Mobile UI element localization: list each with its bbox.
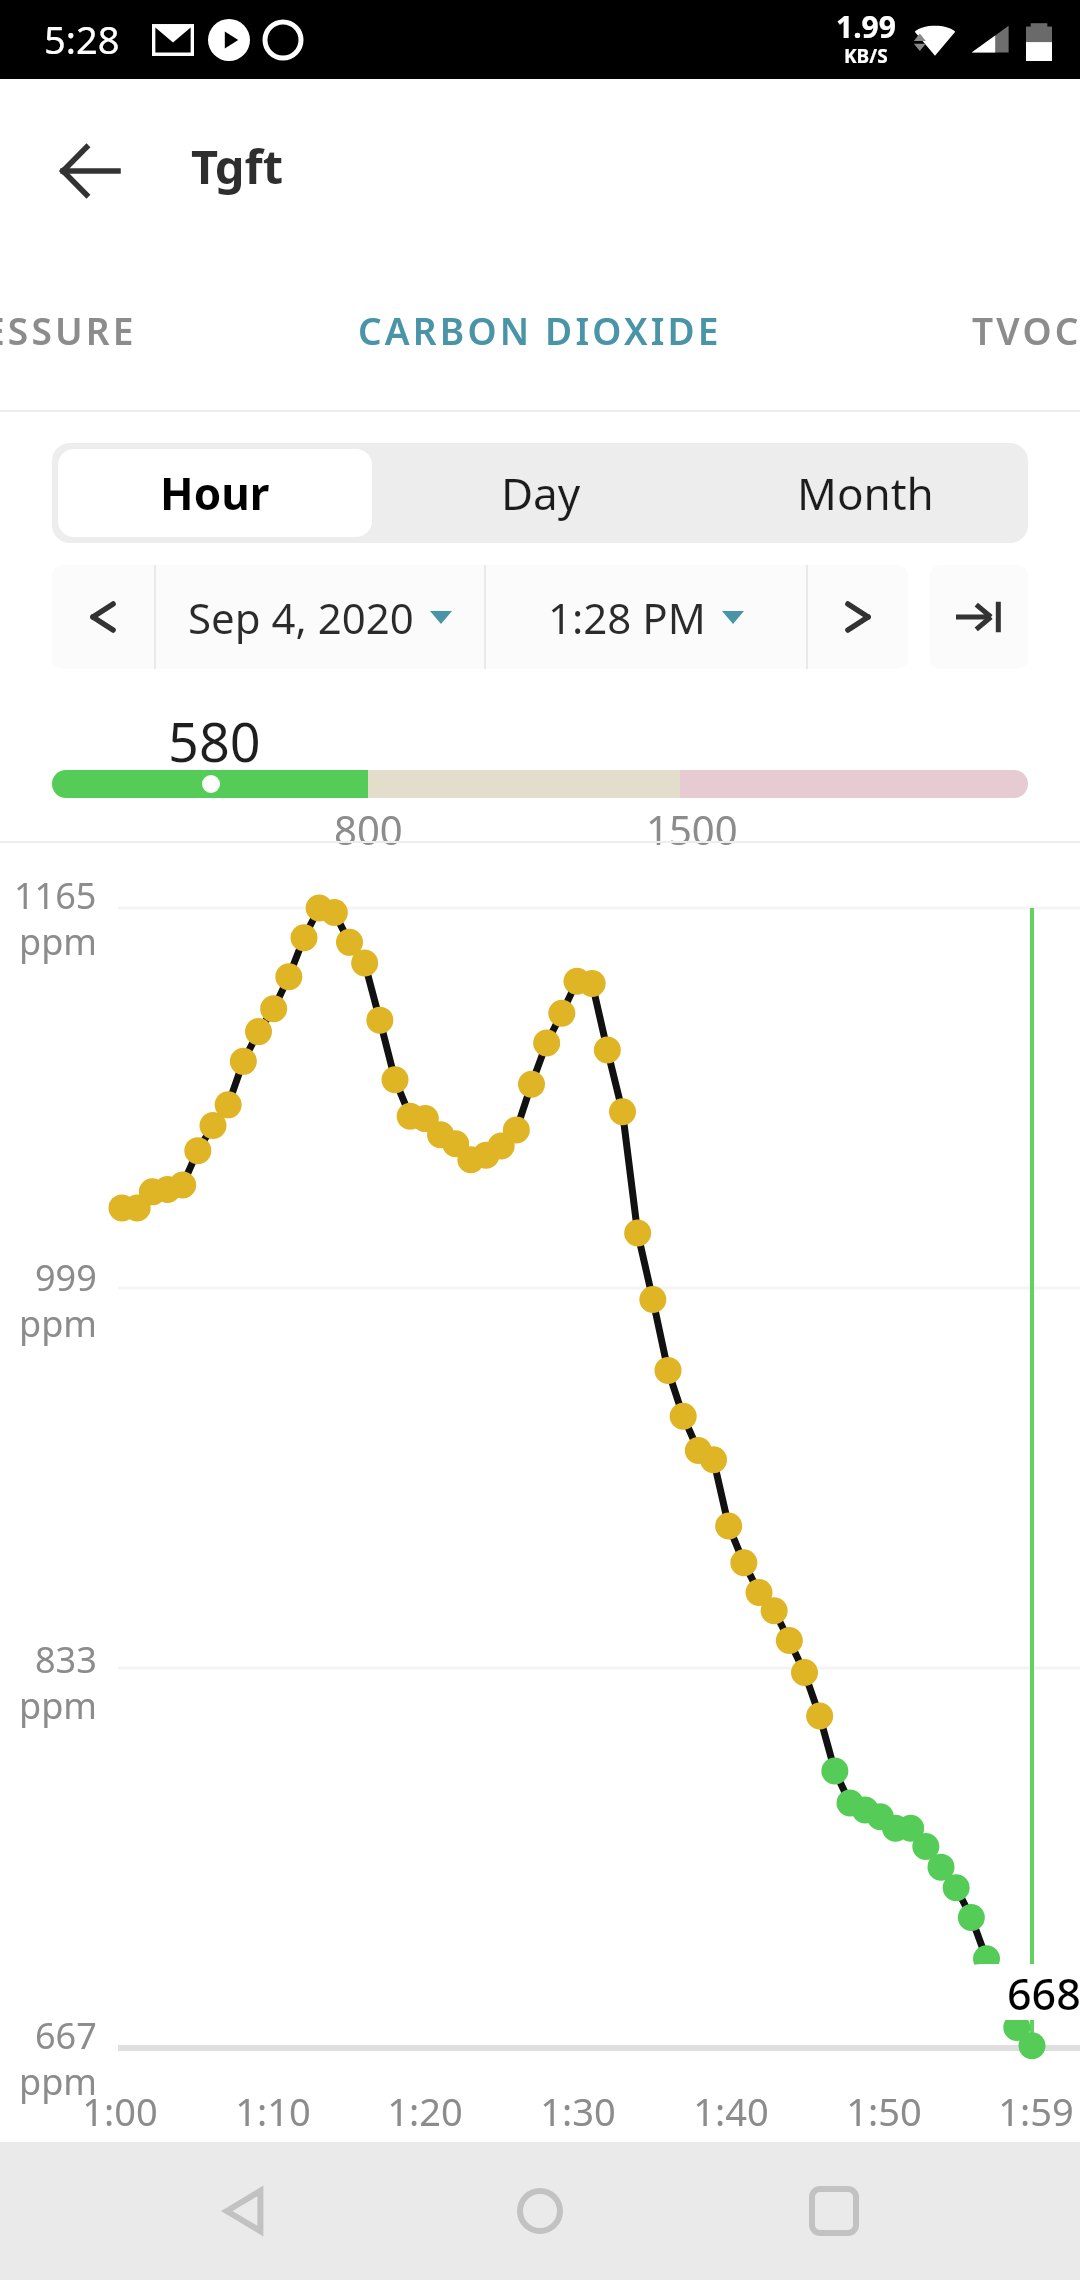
staticText: 1165 xyxy=(14,871,97,920)
staticText: Hour xyxy=(160,463,270,523)
staticText: 1500 xyxy=(646,802,738,856)
staticText: 1:30 xyxy=(508,2085,648,2137)
button[interactable]: Sep 4, 2020 xyxy=(156,565,484,669)
button[interactable]: TVOC xyxy=(972,305,1080,355)
staticText: 800 xyxy=(334,802,403,856)
staticText: 580 xyxy=(168,704,261,778)
staticText: 5:28 xyxy=(44,13,120,65)
staticText: 1:40 xyxy=(661,2085,801,2137)
button[interactable]: Back xyxy=(198,2163,294,2259)
staticText: ppm xyxy=(19,1681,97,1730)
button[interactable]: CARBON DIOXIDE xyxy=(358,305,722,355)
staticText: 1:28 PM xyxy=(548,589,706,646)
staticText: Tgft xyxy=(191,134,284,198)
button[interactable]: Hour xyxy=(58,449,372,537)
button[interactable]: Recents xyxy=(786,2163,882,2259)
staticText: 1:50 xyxy=(814,2085,954,2137)
staticText: ppm xyxy=(19,2057,97,2106)
staticText: ppm xyxy=(19,917,97,966)
button[interactable]: Home xyxy=(492,2163,588,2259)
staticText: Day xyxy=(501,463,581,523)
staticText: 1:20 xyxy=(355,2085,495,2137)
button[interactable]: Previous xyxy=(52,565,154,669)
staticText: 668 xyxy=(1007,1964,1080,2020)
staticText: 1:00 xyxy=(50,2085,190,2137)
button[interactable]: Day xyxy=(384,449,697,537)
button[interactable]: ESSURE xyxy=(0,305,137,355)
staticText: 1.99 xyxy=(836,6,896,47)
staticText: 999 xyxy=(35,1253,97,1302)
button[interactable]: Jump to latest xyxy=(930,565,1028,669)
staticText: 1:59 xyxy=(966,2085,1080,2137)
staticText: Sep 4, 2020 xyxy=(188,589,414,646)
button[interactable]: Month xyxy=(709,449,1022,537)
button[interactable]: Next xyxy=(808,565,908,669)
button[interactable]: Back xyxy=(44,125,136,217)
staticText: 667 xyxy=(35,2011,97,2060)
staticText: KB/S xyxy=(844,43,888,69)
button[interactable]: 1:28 PM xyxy=(486,565,806,669)
staticText: Month xyxy=(797,463,934,523)
staticText: 1:10 xyxy=(203,2085,343,2137)
staticText: 833 xyxy=(35,1635,97,1684)
staticText: ppm xyxy=(19,1299,97,1348)
